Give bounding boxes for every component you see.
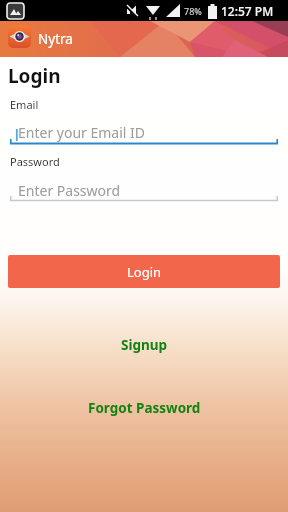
staticText: 12:57 PM xyxy=(221,3,274,19)
staticText: Signup xyxy=(121,336,168,354)
staticText: Enter Password xyxy=(18,181,121,200)
staticText: Forgot Password xyxy=(88,399,201,417)
button[interactable]: Enter your Email ID xyxy=(10,121,278,144)
button[interactable]: Signup xyxy=(0,336,288,354)
button[interactable]: Login xyxy=(8,255,280,288)
button[interactable]: Forgot Password xyxy=(0,399,288,417)
staticText: 78% xyxy=(184,5,202,17)
button[interactable]: Enter Password xyxy=(10,179,278,201)
staticText: Password xyxy=(10,154,60,169)
staticText: Login xyxy=(127,263,162,281)
staticText: Nytra xyxy=(38,30,73,48)
button[interactable] xyxy=(8,25,31,48)
staticText: Enter your Email ID xyxy=(18,123,146,142)
staticText: Email xyxy=(10,97,39,112)
staticText: Login xyxy=(8,63,61,89)
